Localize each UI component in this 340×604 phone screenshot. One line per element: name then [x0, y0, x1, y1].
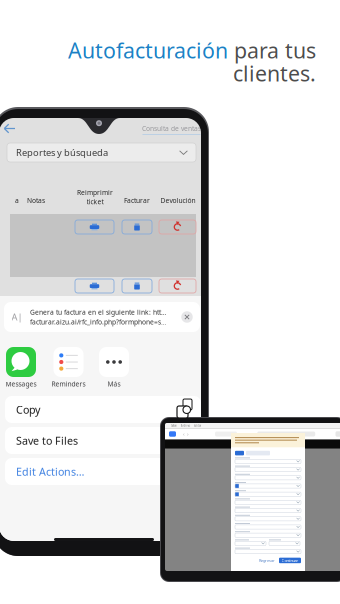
- button[interactable]: Messages: [2, 347, 40, 388]
- staticText: facturar.aizu.ai/rfc_info.php?formphone=…: [30, 317, 167, 326]
- staticText: Reminders: [51, 379, 85, 388]
- staticText: Regresar: [259, 558, 275, 563]
- button[interactable]: Close: [181, 311, 193, 323]
- staticText: Genera tu factura en el siguiente link: …: [30, 308, 167, 316]
- staticText: Messages: [5, 379, 36, 388]
- staticText: Facturar: [124, 196, 150, 205]
- button[interactable]: Facturar: [122, 220, 152, 234]
- staticText: para tus: [228, 36, 316, 64]
- staticText: Continuar: [281, 558, 298, 563]
- staticText: Autofacturación: [68, 36, 228, 64]
- button[interactable]: Reportes y búsqueda: [7, 143, 196, 162]
- staticText: Reimprimir: [77, 188, 113, 197]
- button[interactable]: Continuar: [279, 558, 301, 563]
- button[interactable]: Reimprimir ticket: [75, 220, 114, 234]
- staticText: Copy: [16, 402, 40, 417]
- staticText: Reportes y búsqueda: [16, 146, 108, 159]
- button[interactable]: Copy: [5, 396, 201, 423]
- staticText: ticket: [86, 197, 103, 206]
- button[interactable]: Reimprimir ticket: [75, 279, 114, 293]
- button[interactable]: Más: [95, 347, 133, 388]
- staticText: A|: [11, 311, 22, 323]
- staticText: Save to Files: [16, 433, 78, 448]
- staticText: ‹ ›: [183, 430, 189, 438]
- staticText: Notas: [27, 196, 45, 205]
- button[interactable]: Consulta de ventas: [142, 124, 201, 135]
- button[interactable]: Back: [3, 123, 16, 134]
- staticText: Más: [107, 379, 120, 388]
- staticText: Consulta de ventas: [142, 124, 201, 133]
- staticText: Edit Actions…: [16, 464, 84, 479]
- button[interactable]: Devolución: [159, 279, 196, 293]
- staticText: Editar: [194, 424, 201, 427]
- staticText: Safari: [171, 424, 177, 427]
- staticText: Devolución: [160, 196, 195, 205]
- button[interactable]: Regresar: [259, 558, 275, 563]
- button[interactable]: Edit Actions…: [5, 458, 201, 485]
- button[interactable]: Save to Files: [5, 427, 201, 454]
- staticText: clientes.: [233, 59, 316, 87]
- button[interactable]: Devolución: [159, 220, 196, 234]
- staticText: a: [15, 196, 19, 205]
- button[interactable]: Facturar: [122, 279, 152, 293]
- staticText: Archivo: [180, 424, 190, 427]
- button[interactable]: Reminders: [49, 347, 87, 388]
